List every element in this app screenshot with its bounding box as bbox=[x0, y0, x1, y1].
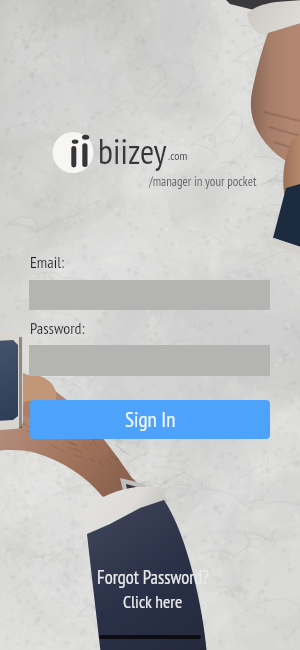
staticText: biizey bbox=[98, 129, 167, 174]
staticText: Click here bbox=[123, 590, 183, 613]
staticText: .com bbox=[168, 148, 188, 164]
staticText: Email: bbox=[30, 252, 65, 273]
staticText: Forgot Password? bbox=[97, 565, 209, 589]
staticText: Password: bbox=[30, 318, 85, 339]
staticText: Sign In bbox=[125, 406, 176, 433]
button[interactable]: Forgot Password? bbox=[60, 565, 245, 613]
staticText: /manager in your pocket bbox=[149, 173, 257, 190]
button[interactable]: Sign In bbox=[30, 400, 270, 439]
